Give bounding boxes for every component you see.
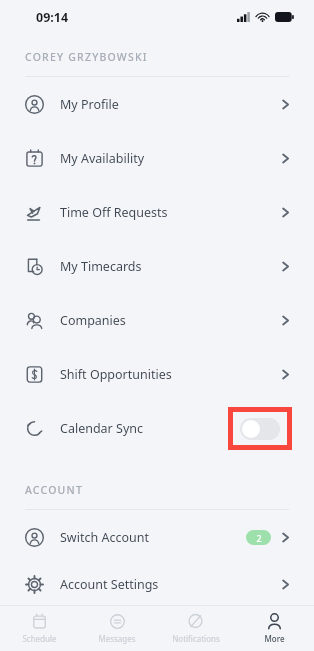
staticText: Calendar Sync bbox=[60, 420, 228, 437]
staticText: My Timecards bbox=[60, 258, 279, 275]
staticText: My Profile bbox=[60, 96, 279, 113]
button[interactable]: Schedule bbox=[0, 606, 78, 651]
staticText: More bbox=[264, 633, 285, 644]
staticText: COREY GRZYBOWSKI bbox=[25, 50, 148, 64]
staticText: Account Settings bbox=[60, 576, 279, 593]
staticText: 2 bbox=[256, 532, 262, 544]
staticText: Shift Opportunities bbox=[60, 366, 279, 383]
button[interactable]: Notifications bbox=[156, 606, 235, 651]
button[interactable]: More bbox=[235, 606, 314, 651]
button[interactable]: My Availability bbox=[0, 131, 314, 185]
staticText: Switch Account bbox=[60, 529, 246, 546]
button[interactable]: Companies bbox=[0, 293, 314, 347]
staticText: Messages bbox=[98, 633, 136, 644]
button[interactable]: My Profile bbox=[0, 77, 314, 131]
button[interactable]: Calendar Sync toggle bbox=[233, 412, 287, 445]
staticText: Time Off Requests bbox=[60, 204, 279, 221]
staticText: My Availability bbox=[60, 150, 279, 167]
button[interactable]: Account Settings bbox=[0, 564, 314, 605]
button[interactable]: My Timecards bbox=[0, 239, 314, 293]
staticText: Companies bbox=[60, 312, 279, 329]
staticText: 09:14 bbox=[36, 9, 69, 26]
button[interactable]: Time Off Requests bbox=[0, 185, 314, 239]
button[interactable]: Shift Opportunities bbox=[0, 347, 314, 401]
staticText: Notifications bbox=[172, 633, 220, 644]
staticText: Schedule bbox=[22, 633, 57, 644]
button[interactable]: Calendar Sync bbox=[0, 401, 314, 455]
button[interactable]: Switch Account bbox=[0, 510, 314, 564]
button[interactable]: Messages bbox=[78, 606, 156, 651]
staticText: ACCOUNT bbox=[25, 483, 84, 497]
